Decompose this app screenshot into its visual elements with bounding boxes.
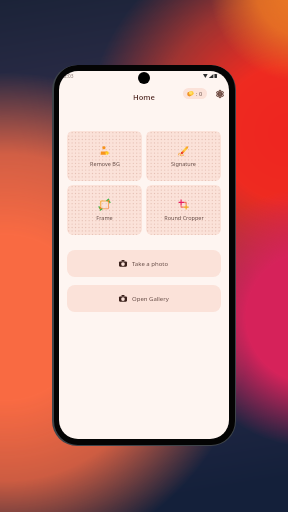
button[interactable]: Open Gallery <box>67 285 221 312</box>
button[interactable]: : 0 <box>183 88 207 99</box>
staticText: Open Gallery <box>132 295 169 303</box>
button[interactable]: Signature <box>146 131 221 181</box>
button[interactable]: Remove BG <box>67 131 142 181</box>
staticText: Take a photo <box>132 260 169 268</box>
button[interactable]: Round Cropper <box>146 185 221 235</box>
button[interactable]: Take a photo <box>67 250 221 277</box>
button[interactable]: Settings <box>213 87 226 100</box>
staticText: Signature <box>171 160 196 167</box>
staticText: Remove BG <box>90 160 120 167</box>
staticText: Frame <box>96 214 113 221</box>
staticText: Home <box>133 92 155 102</box>
staticText: 2:03 <box>64 73 74 80</box>
button[interactable]: Frame <box>67 185 142 235</box>
staticText: : 0 <box>196 90 203 97</box>
staticText: Round Cropper <box>164 214 204 221</box>
